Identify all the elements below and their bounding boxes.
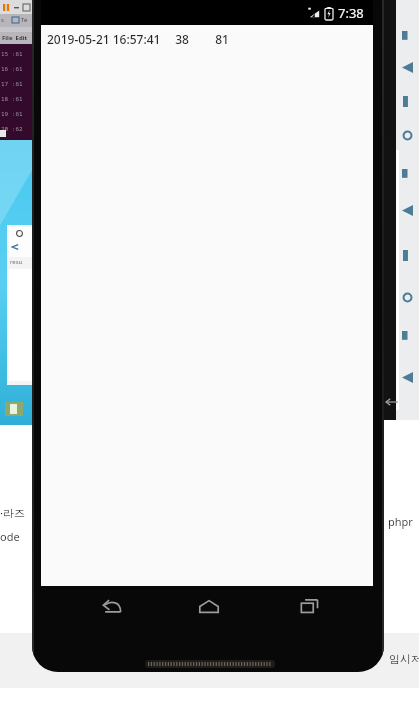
staticText: ·라즈 <box>0 505 25 520</box>
staticText: 2019-05-21 16:57:41 <box>47 31 161 47</box>
staticText: 38 <box>175 31 189 47</box>
staticText: 16 :61 <box>1 65 23 73</box>
button[interactable]: Recent apps <box>287 590 331 622</box>
staticText: 17 :61 <box>1 80 23 88</box>
staticText: 18 :61 <box>1 95 23 103</box>
staticText: 81 <box>215 31 229 47</box>
staticText: resu <box>10 258 23 266</box>
button[interactable]: 2019-05-21 16:57:41 <box>41 25 373 53</box>
staticText: phpr <box>388 514 413 529</box>
button[interactable]: Home <box>187 590 231 622</box>
staticText: s <box>1 16 4 24</box>
staticText: 7:38 <box>338 4 364 22</box>
staticText: 임시저 <box>389 652 419 666</box>
staticText: ode <box>0 529 20 544</box>
staticText: Te <box>21 16 28 24</box>
staticText: 20 :62 <box>1 125 23 133</box>
staticText: 15 :61 <box>1 50 23 58</box>
staticText: File Edit <box>2 34 28 42</box>
button[interactable]: Back <box>90 590 134 622</box>
staticText: 19 :61 <box>1 110 23 118</box>
